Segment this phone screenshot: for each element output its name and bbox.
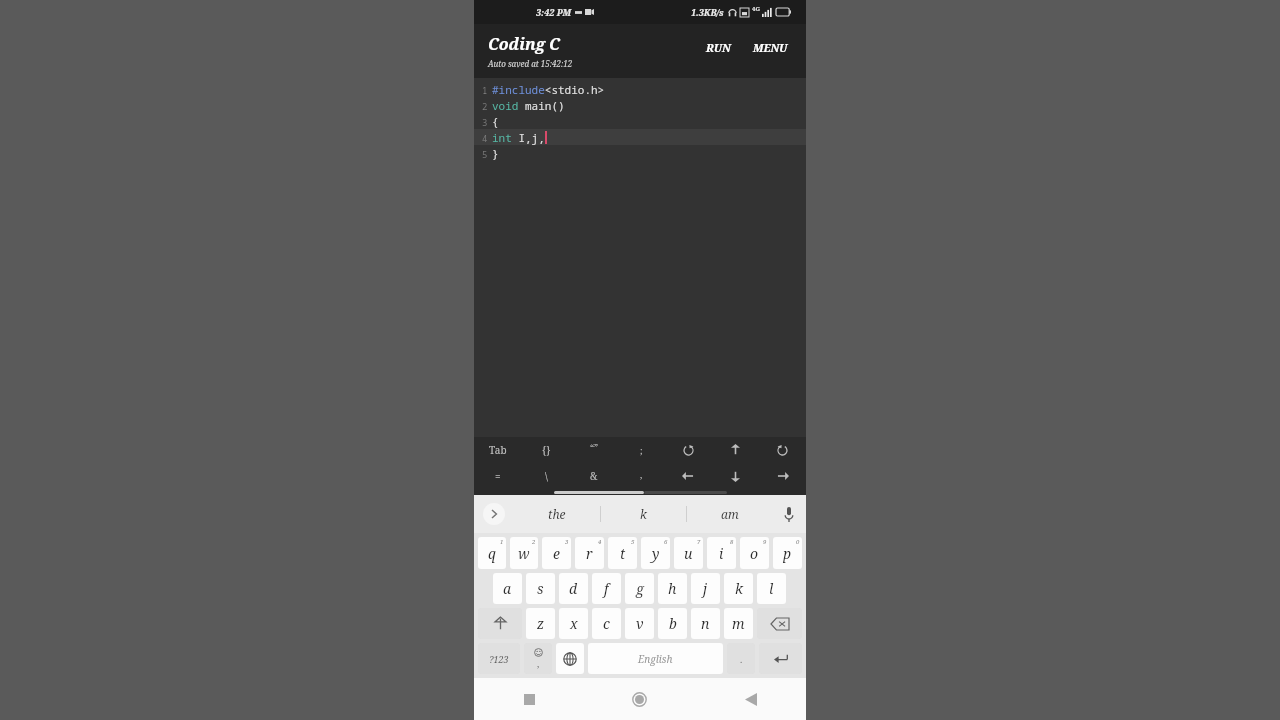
- staticText: 2: [532, 538, 536, 546]
- staticText: t: [620, 544, 626, 563]
- button[interactable]: 2: [474, 97, 806, 113]
- button[interactable]: u: [674, 537, 703, 569]
- staticText: ;: [640, 444, 643, 456]
- button[interactable]: a: [493, 573, 522, 604]
- button[interactable]: Editor key: [522, 437, 570, 463]
- button[interactable]: Symbols: [478, 643, 520, 674]
- staticText: q: [488, 544, 496, 563]
- button[interactable]: z: [526, 608, 555, 639]
- staticText: int I,j,: [492, 130, 545, 145]
- button[interactable]: Editor key: [618, 463, 665, 489]
- button[interactable]: b: [658, 608, 687, 639]
- staticText: {}: [542, 443, 551, 457]
- button[interactable]: d: [559, 573, 588, 604]
- staticText: 6: [664, 538, 668, 546]
- button[interactable]: Back: [695, 678, 806, 720]
- staticText: RUN: [706, 40, 731, 55]
- staticText: s: [537, 579, 544, 598]
- button[interactable]: l: [757, 573, 786, 604]
- button[interactable]: m: [724, 608, 753, 639]
- button[interactable]: g: [625, 573, 654, 604]
- staticText: i: [719, 544, 724, 563]
- staticText: 3: [565, 538, 569, 546]
- button[interactable]: Editor key: [474, 463, 522, 489]
- staticText: 1: [482, 84, 488, 96]
- button[interactable]: RUN: [698, 34, 739, 61]
- button[interactable]: f: [592, 573, 621, 604]
- staticText: b: [669, 614, 677, 633]
- button[interactable]: y: [641, 537, 670, 569]
- staticText: 4G: [752, 5, 761, 13]
- button[interactable]: MENU: [747, 34, 794, 61]
- button[interactable]: 3: [474, 113, 806, 129]
- button[interactable]: Editor key: [570, 437, 618, 463]
- staticText: 4: [482, 132, 488, 144]
- staticText: n: [701, 614, 710, 633]
- button[interactable]: v: [625, 608, 654, 639]
- staticText: u: [684, 544, 693, 563]
- button[interactable]: Editor key: [665, 437, 712, 463]
- staticText: e: [553, 544, 560, 563]
- button[interactable]: Recents: [474, 678, 584, 720]
- button[interactable]: p: [773, 537, 802, 569]
- button[interactable]: Editor key: [759, 463, 806, 489]
- staticText: .: [740, 653, 743, 665]
- button[interactable]: r: [575, 537, 604, 569]
- button[interactable]: c: [592, 608, 621, 639]
- staticText: g: [636, 579, 644, 598]
- button[interactable]: Expand suggestions: [474, 495, 514, 533]
- button[interactable]: w: [510, 537, 538, 569]
- staticText: r: [586, 544, 593, 563]
- button[interactable]: Editor key: [618, 437, 665, 463]
- staticText: =: [495, 469, 501, 483]
- staticText: h: [668, 579, 677, 598]
- staticText: {: [492, 114, 499, 129]
- button[interactable]: e: [542, 537, 571, 569]
- button[interactable]: Backspace: [757, 608, 802, 639]
- button[interactable]: Editor key: [665, 463, 712, 489]
- staticText: c: [603, 614, 610, 633]
- staticText: x: [570, 614, 578, 633]
- button[interactable]: k: [724, 573, 753, 604]
- staticText: 3: [482, 116, 488, 128]
- button[interactable]: Voice input: [772, 495, 806, 533]
- button[interactable]: Editor key: [474, 437, 522, 463]
- staticText: 5: [631, 538, 635, 546]
- button[interactable]: Shift: [478, 608, 522, 639]
- button[interactable]: Editor key: [522, 463, 570, 489]
- button[interactable]: English: [588, 643, 723, 674]
- button[interactable]: Emoji and comma: [524, 643, 552, 674]
- button[interactable]: n: [691, 608, 720, 639]
- button[interactable]: o: [740, 537, 769, 569]
- button[interactable]: x: [559, 608, 588, 639]
- button[interactable]: Home: [584, 678, 695, 720]
- button[interactable]: Change language: [556, 643, 584, 674]
- button[interactable]: 4: [474, 129, 806, 145]
- staticText: MENU: [753, 40, 788, 55]
- button[interactable]: q: [478, 537, 506, 569]
- button[interactable]: t: [608, 537, 637, 569]
- staticText: 0: [796, 538, 800, 546]
- button[interactable]: 5: [474, 145, 806, 161]
- staticText: Coding C: [488, 33, 560, 55]
- staticText: p: [783, 544, 792, 563]
- button[interactable]: Editor key: [712, 463, 759, 489]
- button[interactable]: Editor key: [712, 437, 759, 463]
- button[interactable]: Enter: [759, 643, 802, 674]
- button[interactable]: i: [707, 537, 736, 569]
- button[interactable]: s: [526, 573, 555, 604]
- staticText: English: [638, 652, 673, 666]
- button[interactable]: k: [601, 495, 686, 533]
- button[interactable]: the: [514, 495, 600, 533]
- button[interactable]: am: [687, 495, 772, 533]
- button[interactable]: Editor key: [759, 437, 806, 463]
- button[interactable]: j: [691, 573, 720, 604]
- staticText: am: [721, 506, 739, 522]
- staticText: 5: [482, 148, 488, 160]
- button[interactable]: Editor key: [570, 463, 618, 489]
- button[interactable]: 1: [474, 81, 806, 97]
- staticText: l: [769, 579, 774, 598]
- staticText: }: [492, 146, 499, 161]
- button[interactable]: h: [658, 573, 687, 604]
